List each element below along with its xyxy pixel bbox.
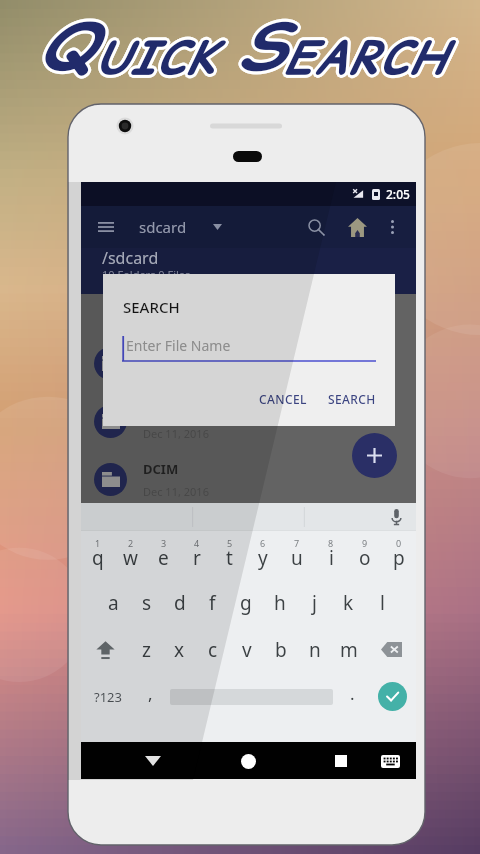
button[interactable]: CANCEL xyxy=(251,385,315,413)
staticText: Dec 11, 2016 xyxy=(143,532,209,543)
button[interactable]: 2 xyxy=(114,531,147,579)
button[interactable]: More options xyxy=(379,214,405,240)
button[interactable]: x xyxy=(163,626,196,673)
button[interactable]: Done xyxy=(369,673,416,720)
staticText: . xyxy=(350,682,355,705)
staticText: k xyxy=(343,590,354,616)
button[interactable]: c xyxy=(196,626,230,673)
staticText: SEARCH xyxy=(123,297,180,317)
staticText: UICK xyxy=(96,23,217,87)
button[interactable]: m xyxy=(332,626,366,673)
button[interactable]: Menu xyxy=(92,213,120,241)
staticText: UICK xyxy=(92,23,213,87)
button[interactable]: Space xyxy=(167,673,335,720)
button[interactable]: 4 xyxy=(180,531,213,579)
button[interactable]: DCIM xyxy=(81,450,416,508)
staticText: s xyxy=(142,590,152,616)
staticText: q xyxy=(92,545,104,571)
staticText: sdcard xyxy=(139,217,187,237)
staticText: z xyxy=(142,637,151,663)
button[interactable]: Android xyxy=(81,392,416,450)
staticText: EARCH xyxy=(283,25,445,89)
button[interactable]: Keyboard xyxy=(373,744,407,778)
button[interactable]: l xyxy=(365,579,399,626)
staticText: Q xyxy=(39,0,97,92)
button[interactable]: 6 xyxy=(246,531,280,579)
staticText: 0 xyxy=(396,537,402,549)
staticText: Dec 11, 2016 xyxy=(143,426,209,441)
staticText: Q xyxy=(36,0,94,89)
staticText: w xyxy=(123,545,138,571)
staticText: 6 xyxy=(260,537,266,549)
staticText: EARCH xyxy=(281,23,443,87)
staticText: y xyxy=(258,545,268,571)
button[interactable]: j xyxy=(297,579,331,626)
button[interactable]: g xyxy=(229,579,263,626)
button[interactable]: SEARCH xyxy=(320,385,384,413)
button[interactable]: Shift xyxy=(81,626,130,673)
button[interactable]: Download xyxy=(81,508,416,543)
staticText: EARCH xyxy=(283,28,445,92)
staticText: UICK xyxy=(96,27,217,91)
staticText: S xyxy=(237,3,283,95)
staticText: 1 xyxy=(95,537,101,549)
staticText: 8 xyxy=(328,537,334,549)
button[interactable]: d xyxy=(163,579,196,626)
staticText: f xyxy=(209,590,216,616)
button[interactable]: z xyxy=(130,626,163,673)
staticText: 4 xyxy=(194,537,200,549)
button[interactable]: n xyxy=(298,626,332,673)
button[interactable]: Backspace xyxy=(366,626,416,673)
button[interactable]: Search xyxy=(301,212,331,242)
staticText: EARCH xyxy=(280,25,442,89)
staticText: UICK xyxy=(94,22,215,86)
staticText: Q xyxy=(38,2,96,94)
button[interactable]: Add xyxy=(352,433,397,478)
staticText: Q xyxy=(34,2,92,94)
staticText: 5 xyxy=(227,537,233,549)
button[interactable]: 7 xyxy=(280,531,314,579)
staticText: r xyxy=(193,545,201,571)
button[interactable]: Home xyxy=(231,744,265,778)
button[interactable]: 0 xyxy=(382,531,416,579)
button[interactable]: Back xyxy=(136,744,170,778)
button[interactable]: v xyxy=(230,626,264,673)
staticText: EARCH xyxy=(281,27,443,91)
button[interactable]: , xyxy=(134,673,167,720)
staticText: 2:05 xyxy=(386,186,410,202)
staticText: S xyxy=(237,0,283,92)
button[interactable]: . xyxy=(335,673,369,720)
button[interactable]: ?123 xyxy=(81,673,134,720)
staticText: e xyxy=(158,545,169,571)
staticText: EARCH xyxy=(285,23,447,87)
button[interactable]: h xyxy=(263,579,297,626)
button[interactable]: 3 xyxy=(147,531,180,579)
staticText: UICK xyxy=(91,25,212,89)
button[interactable]: k xyxy=(331,579,365,626)
button[interactable]: 9 xyxy=(348,531,382,579)
staticText: c xyxy=(208,637,218,663)
staticText: a xyxy=(108,590,119,616)
staticText: o xyxy=(359,545,371,571)
staticText: S xyxy=(239,2,285,94)
staticText: UICK xyxy=(97,25,218,89)
button[interactable]: a xyxy=(97,579,130,626)
button[interactable]: s xyxy=(130,579,163,626)
button[interactable]: b xyxy=(264,626,298,673)
button[interactable]: 5 xyxy=(213,531,246,579)
staticText: S xyxy=(240,0,286,92)
staticText: S xyxy=(235,2,281,94)
staticText: Q xyxy=(34,0,92,90)
staticText: m xyxy=(340,637,358,663)
staticText: j xyxy=(312,590,317,616)
button[interactable]: 1 xyxy=(81,531,114,579)
staticText: S xyxy=(237,0,283,89)
staticText: u xyxy=(291,545,303,571)
staticText: 10 Folders 0 Files xyxy=(102,267,191,282)
button[interactable]: Home xyxy=(342,212,372,242)
button[interactable]: Recents xyxy=(324,744,358,778)
button[interactable]: 8 xyxy=(314,531,348,579)
button[interactable]: Alarms xyxy=(81,334,416,392)
button[interactable]: f xyxy=(196,579,229,626)
